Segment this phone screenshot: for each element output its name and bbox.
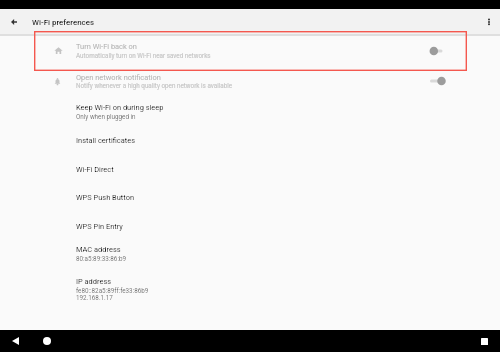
button[interactable]: Home [32,330,62,352]
button[interactable]: Recent apps [469,330,499,352]
staticText: Keep Wi-Fi on during sleep [76,103,164,112]
staticText: Install certificates [76,136,135,145]
button[interactable] [0,97,500,126]
button[interactable]: More options [476,9,500,34]
button[interactable] [0,183,500,211]
staticText: Wi-Fi Direct [76,165,114,174]
button[interactable] [0,31,500,70]
staticText: MAC address [76,245,121,254]
button[interactable] [0,70,500,98]
button[interactable]: Back [0,330,30,352]
button[interactable]: Navigate up [0,9,28,34]
staticText: WPS Push Button [76,193,135,202]
button[interactable] [0,211,500,240]
button[interactable] [0,126,500,154]
button[interactable] [0,269,500,307]
staticText: Open network notification [76,73,161,82]
staticText: Automatically turn on Wi-Fi near saved n… [76,52,211,59]
button[interactable] [0,154,500,183]
button[interactable] [0,240,500,269]
staticText: Turn Wi-Fi back on [76,42,137,51]
staticText: 192.168.1.17 [76,294,113,301]
staticText: WPS Pin Entry [76,222,123,231]
staticText: Notify whenever a high quality open netw… [76,82,233,89]
staticText: IP address [76,277,112,286]
staticText: 80:a5:89:33:86:b9 [76,255,126,262]
staticText: Wi-Fi preferences [32,18,94,27]
staticText: Only when plugged in [76,113,136,120]
staticText: fe80::82a5:89ff:fe33:86b9 [76,287,149,294]
